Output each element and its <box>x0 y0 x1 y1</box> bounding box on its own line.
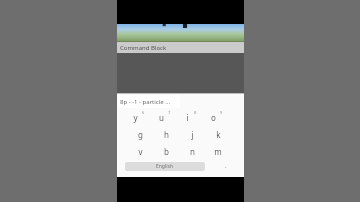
staticText: v <box>138 146 143 157</box>
staticText: j <box>191 129 194 140</box>
button[interactable]: b <box>154 143 178 160</box>
staticText: o <box>211 112 216 123</box>
staticText: y <box>133 112 138 123</box>
button[interactable]: m <box>206 143 230 160</box>
button[interactable]: Period <box>221 161 231 171</box>
button[interactable]: k <box>206 126 230 143</box>
staticText: 8p - -1 - particle ... <box>120 98 171 106</box>
button[interactable]: g <box>128 126 152 143</box>
staticText: b <box>164 146 169 157</box>
staticText: 6 <box>142 110 145 115</box>
button[interactable]: 8p - -1 - particle ... <box>118 95 180 108</box>
staticText: h <box>164 129 169 140</box>
staticText: i <box>186 112 189 123</box>
staticText: 8 <box>194 110 197 115</box>
button[interactable]: i <box>175 109 199 126</box>
staticText: n <box>190 146 195 157</box>
button[interactable]: o <box>201 109 225 126</box>
staticText: u <box>159 112 164 123</box>
staticText: g <box>138 129 143 140</box>
staticText: . <box>225 162 227 170</box>
staticText: English <box>156 163 174 170</box>
button[interactable]: English <box>125 162 205 171</box>
staticText: 7 <box>168 110 171 115</box>
button[interactable]: v <box>128 143 152 160</box>
button[interactable]: y <box>123 109 147 126</box>
button[interactable]: h <box>154 126 178 143</box>
button[interactable]: j <box>180 126 204 143</box>
staticText: Command Block <box>120 44 167 52</box>
staticText: 9 <box>220 110 223 115</box>
staticText: k <box>216 129 221 140</box>
button[interactable]: Command Block <box>117 42 244 53</box>
staticText: m <box>214 146 222 157</box>
button[interactable]: u <box>149 109 173 126</box>
button[interactable]: n <box>180 143 204 160</box>
